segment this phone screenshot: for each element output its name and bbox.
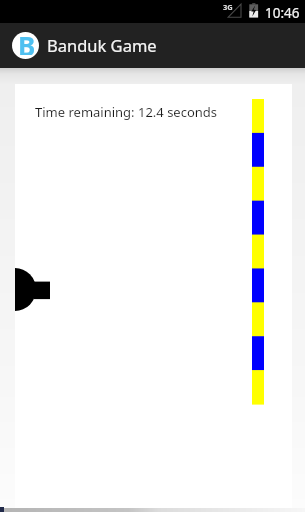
button[interactable]: App icon [12, 32, 39, 59]
staticText: Banduk Game [47, 34, 157, 56]
staticText: 3G [223, 2, 233, 12]
staticText: 10:46 [265, 4, 300, 22]
staticText: Time remaining: 12.4 seconds [35, 103, 218, 121]
button[interactable]: Game board, tap to shoot [15, 84, 292, 509]
staticText: B [18, 32, 36, 55]
other: Cannon [15, 268, 51, 311]
